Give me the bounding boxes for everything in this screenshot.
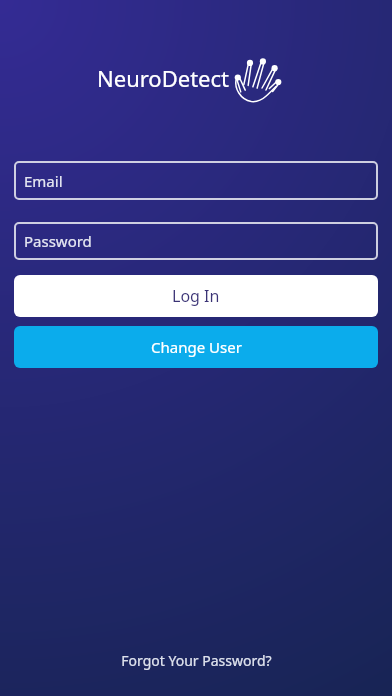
button[interactable]: Log In xyxy=(14,275,378,317)
staticText: Change User xyxy=(151,337,242,357)
staticText: Password xyxy=(24,231,92,251)
staticText: Log In xyxy=(172,285,220,307)
button[interactable]: Change User xyxy=(14,326,378,368)
button[interactable]: Email xyxy=(14,161,378,200)
staticText: Email xyxy=(24,171,63,191)
button[interactable]: Password xyxy=(14,222,378,260)
staticText: NeuroDetect xyxy=(97,63,230,93)
button[interactable]: Forgot Your Password? xyxy=(121,651,272,670)
